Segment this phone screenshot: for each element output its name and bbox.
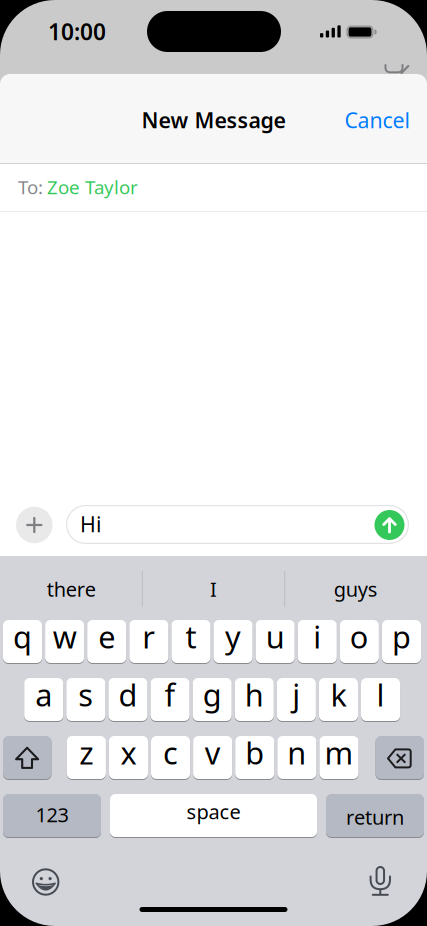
staticText: l xyxy=(377,674,385,715)
button[interactable]: c xyxy=(0,0,427,926)
button[interactable]: o xyxy=(0,0,427,926)
button[interactable]: return xyxy=(0,0,427,926)
staticText: space xyxy=(186,798,240,825)
staticText: n xyxy=(287,732,306,773)
staticText: p xyxy=(392,616,411,657)
button[interactable]: h xyxy=(0,0,427,926)
button[interactable]: Delete xyxy=(0,0,427,926)
staticText: 10:00 xyxy=(48,16,106,46)
staticText: h xyxy=(245,674,264,715)
button[interactable]: u xyxy=(0,0,427,926)
button[interactable]: Send xyxy=(374,510,404,540)
staticText: Zoe Taylor xyxy=(47,175,138,199)
staticText: To: xyxy=(18,175,43,199)
staticText: s xyxy=(78,674,93,715)
button[interactable]: v xyxy=(0,0,427,926)
button[interactable]: guys xyxy=(287,567,425,611)
staticText: j xyxy=(292,674,300,715)
button[interactable]: g xyxy=(0,0,427,926)
button[interactable]: there xyxy=(2,567,140,611)
staticText: a xyxy=(35,674,52,715)
staticText: there xyxy=(47,576,96,602)
button[interactable]: Add attachment xyxy=(16,507,52,543)
staticText: i xyxy=(313,616,321,657)
staticText: return xyxy=(346,804,404,830)
staticText: y xyxy=(225,616,241,657)
button[interactable]: space xyxy=(0,0,427,926)
staticText: guys xyxy=(334,576,378,602)
button[interactable]: z xyxy=(0,0,427,926)
button[interactable]: Emoji xyxy=(32,868,60,896)
staticText: New Message xyxy=(141,106,285,134)
button[interactable]: 123 xyxy=(0,0,427,926)
button[interactable]: f xyxy=(0,0,427,926)
button[interactable]: k xyxy=(0,0,427,926)
staticText: f xyxy=(165,674,176,715)
button[interactable]: l xyxy=(0,0,427,926)
staticText: 123 xyxy=(35,801,68,828)
button[interactable]: a xyxy=(0,0,427,926)
staticText: t xyxy=(185,616,196,657)
staticText: u xyxy=(266,616,285,657)
staticText: k xyxy=(330,674,346,715)
staticText: e xyxy=(98,616,115,657)
button[interactable]: n xyxy=(0,0,427,926)
button[interactable]: Cancel xyxy=(16,106,410,134)
staticText: z xyxy=(79,732,93,773)
staticText: w xyxy=(53,616,77,657)
staticText: g xyxy=(203,674,222,715)
button[interactable]: x xyxy=(0,0,427,926)
staticText: r xyxy=(142,616,155,657)
staticText: c xyxy=(163,732,178,773)
button[interactable]: j xyxy=(0,0,427,926)
button[interactable]: Shift xyxy=(0,0,427,926)
button[interactable]: r xyxy=(0,0,427,926)
button[interactable]: p xyxy=(0,0,427,926)
staticText: v xyxy=(205,732,221,773)
button[interactable]: y xyxy=(0,0,427,926)
staticText: x xyxy=(120,732,136,773)
button[interactable]: Dictate xyxy=(370,866,391,896)
button[interactable]: I xyxy=(144,567,282,611)
button[interactable]: w xyxy=(0,0,427,926)
staticText: m xyxy=(324,732,353,773)
button[interactable]: m xyxy=(0,0,427,926)
staticText: d xyxy=(118,674,137,715)
staticText: q xyxy=(13,616,32,657)
staticText: I xyxy=(210,576,217,602)
button[interactable]: b xyxy=(0,0,427,926)
button[interactable]: To: xyxy=(0,175,427,199)
button[interactable]: i xyxy=(0,0,427,926)
button[interactable]: s xyxy=(0,0,427,926)
button[interactable]: e xyxy=(0,0,427,926)
staticText: Hi xyxy=(80,510,102,538)
button[interactable]: t xyxy=(0,0,427,926)
staticText: o xyxy=(350,616,369,657)
button[interactable]: q xyxy=(0,0,427,926)
staticText: Cancel xyxy=(344,106,410,134)
staticText: b xyxy=(245,732,264,773)
button[interactable]: d xyxy=(0,0,427,926)
